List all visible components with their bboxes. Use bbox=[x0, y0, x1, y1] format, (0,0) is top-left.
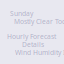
staticText: Wind Humidity Info bbox=[15, 48, 64, 57]
staticText: Details bbox=[22, 40, 44, 49]
staticText: Hourly Forecast bbox=[7, 32, 56, 41]
staticText: Mostly Clear Today bbox=[14, 17, 64, 26]
staticText: Sunday bbox=[10, 9, 33, 18]
